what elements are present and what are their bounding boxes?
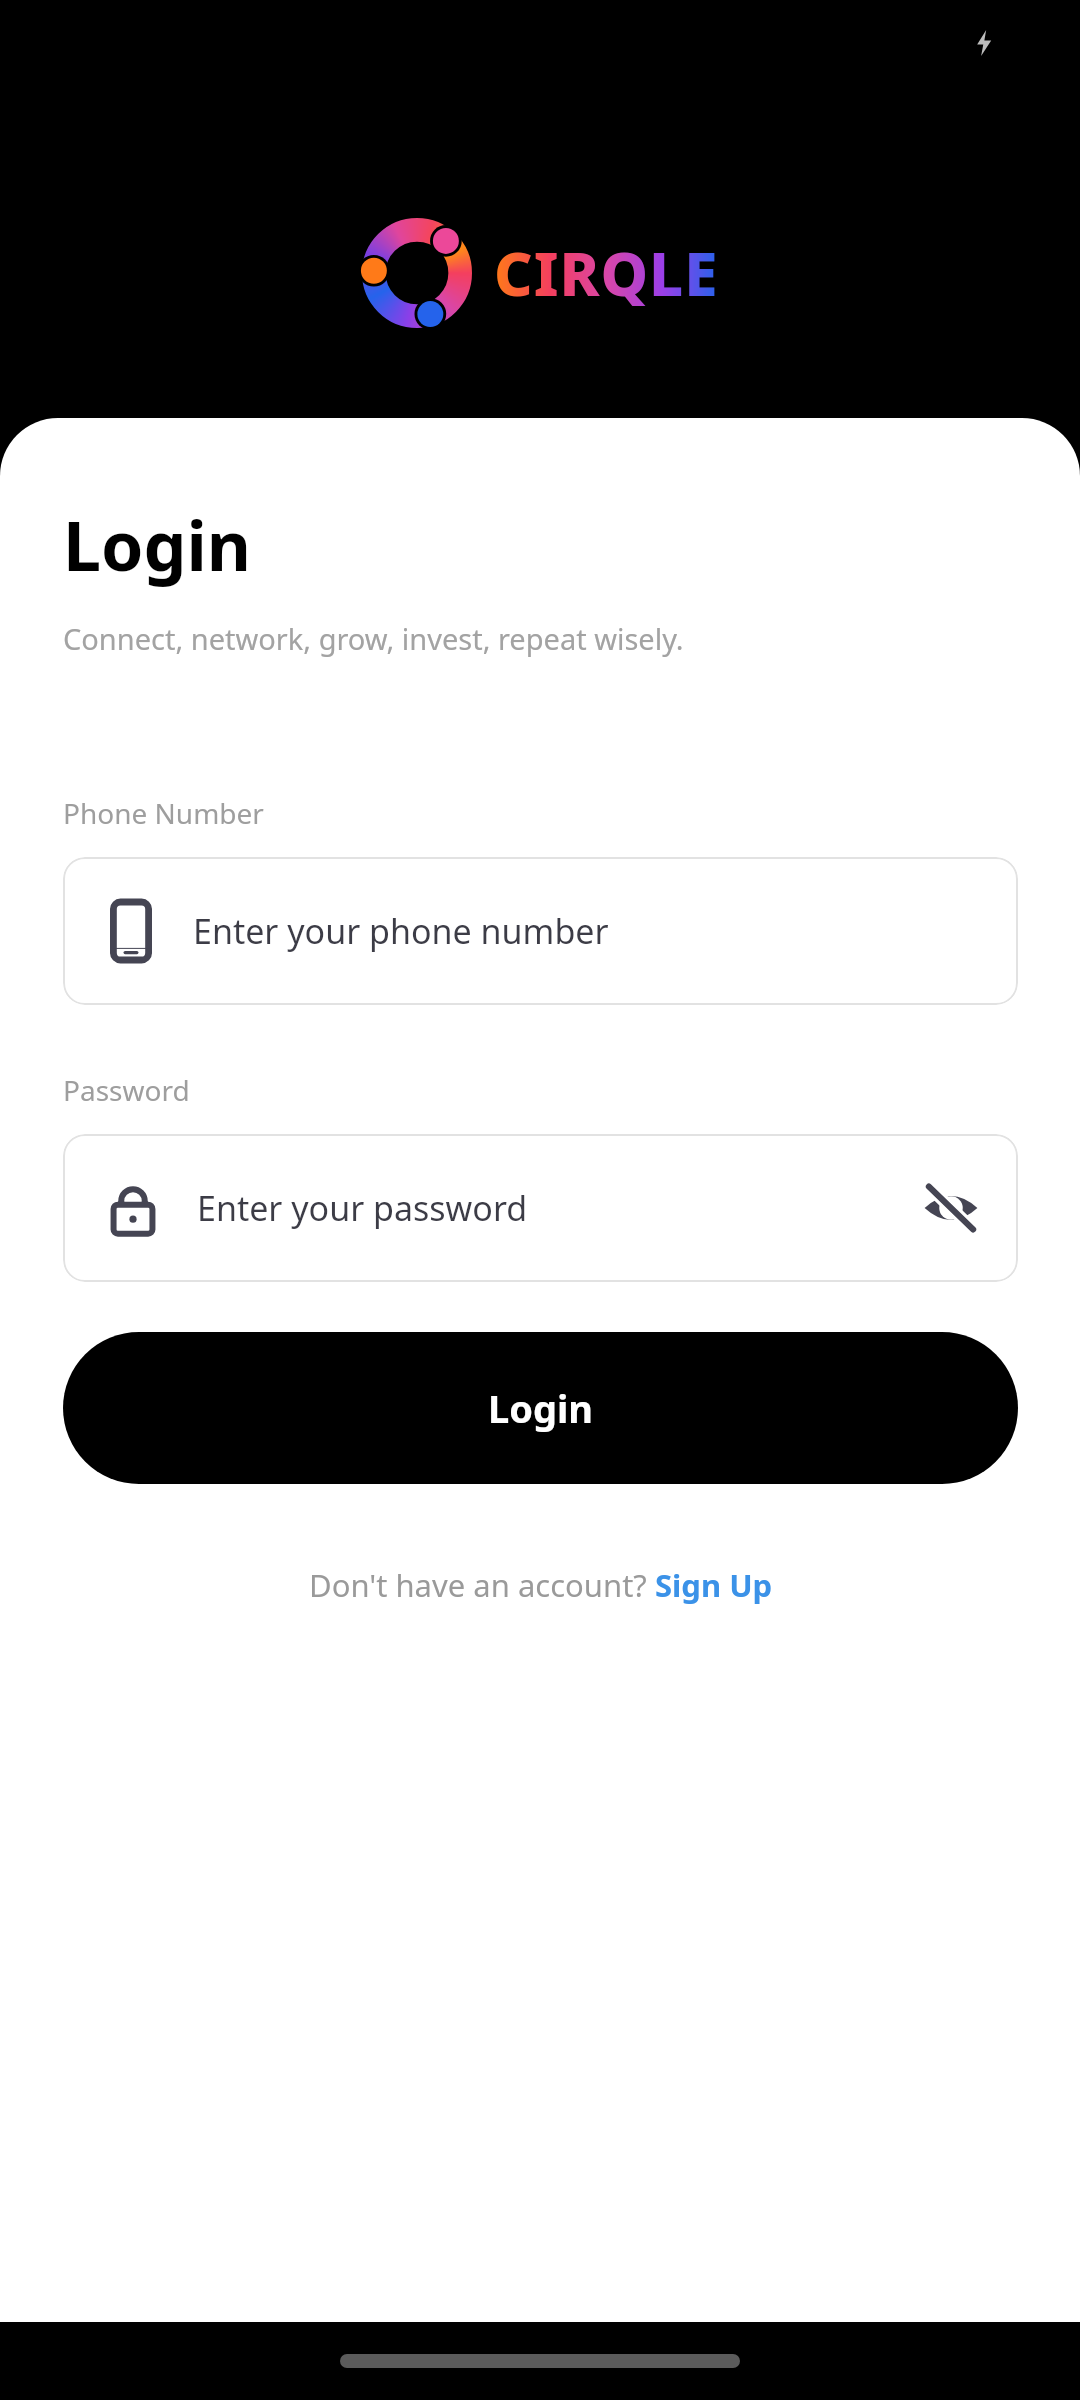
other: Phone: [109, 902, 153, 960]
staticText: Password: [63, 1071, 190, 1109]
button[interactable]: Show password: [914, 1171, 988, 1245]
button[interactable]: Don't have an account?: [301, 1558, 781, 1612]
button[interactable]: Login: [63, 1332, 1018, 1484]
button[interactable]: Lock: [63, 1134, 1018, 1282]
staticText: Enter your password: [197, 1185, 528, 1231]
staticText: Enter your phone number: [193, 908, 609, 954]
staticText: CIRQLE: [494, 232, 719, 314]
staticText: Connect, network, grow, invest, repeat w…: [63, 619, 684, 658]
staticText: Login: [63, 498, 252, 591]
staticText: Sign Up: [655, 1564, 773, 1606]
staticText: Phone Number: [63, 794, 264, 832]
staticText: Login: [488, 1382, 594, 1434]
button[interactable]: Phone: [63, 857, 1018, 1005]
staticText: Don't have an account?: [309, 1564, 655, 1606]
other: Lock: [109, 1180, 157, 1236]
